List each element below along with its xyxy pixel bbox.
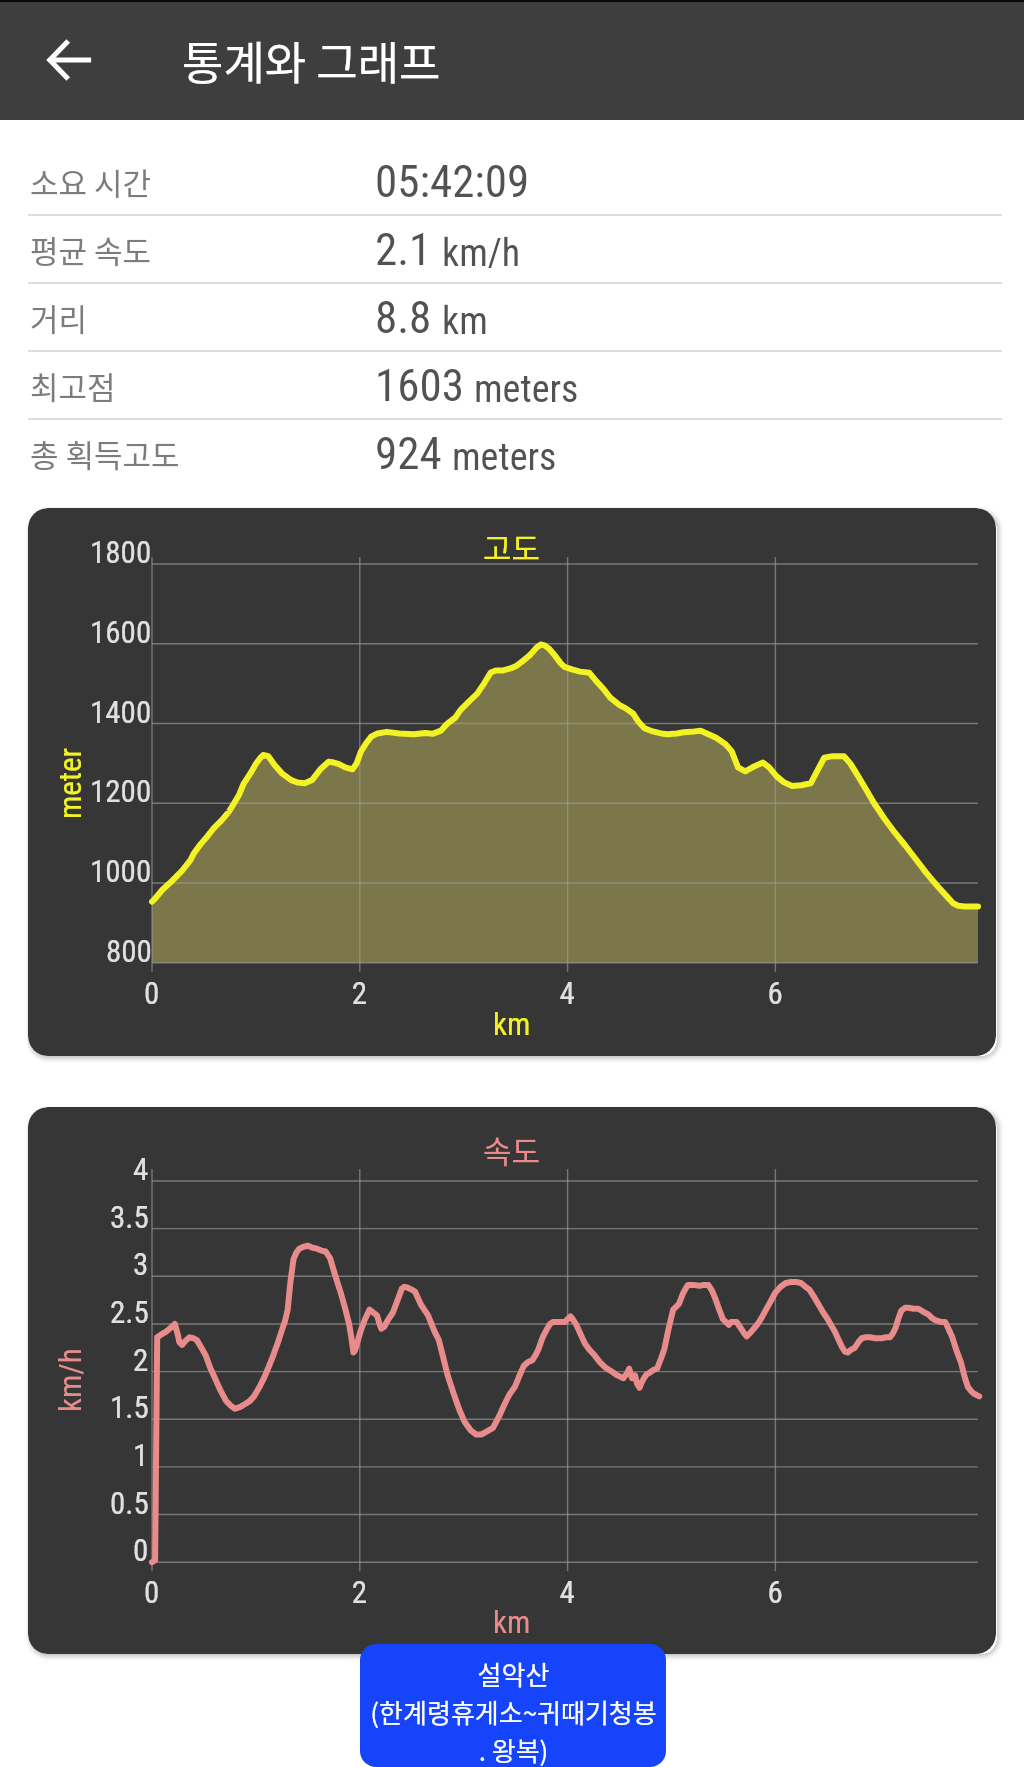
staticText: 총 획득고도 xyxy=(30,431,375,476)
button[interactable]: 거리 xyxy=(0,284,1024,350)
staticText: km xyxy=(442,299,488,344)
staticText: 05:42:09 xyxy=(375,155,530,208)
button[interactable]: 총 획득고도 xyxy=(0,420,1024,486)
staticText: 소요 시간 xyxy=(30,159,375,204)
button[interactable]: 최고점 xyxy=(0,352,1024,418)
staticText: 8.8 xyxy=(375,291,432,344)
staticText: 통계와 그래프 xyxy=(182,28,441,93)
button[interactable]: Elevation chart xyxy=(28,508,996,1056)
button[interactable]: 설악산 (한계령휴게소~귀때기청봉 . 왕복) xyxy=(360,1644,666,1767)
staticText: 최고점 xyxy=(30,363,375,408)
staticText: meters xyxy=(474,367,579,412)
staticText: 2.1 xyxy=(375,223,432,276)
staticText: km/h xyxy=(442,231,521,276)
button[interactable]: 평균 속도 xyxy=(0,216,1024,282)
staticText: 1603 xyxy=(375,359,464,412)
button[interactable]: Speed chart xyxy=(28,1107,996,1654)
button[interactable]: 소요 시간 xyxy=(0,148,1024,214)
staticText: 설악산 (한계령휴게소~귀때기청봉 . 왕복) xyxy=(370,1655,657,1767)
staticText: 평균 속도 xyxy=(30,227,375,272)
button[interactable]: Back xyxy=(14,4,126,116)
staticText: 924 xyxy=(375,427,442,480)
staticText: meters xyxy=(452,435,557,480)
staticText: 거리 xyxy=(30,295,375,340)
